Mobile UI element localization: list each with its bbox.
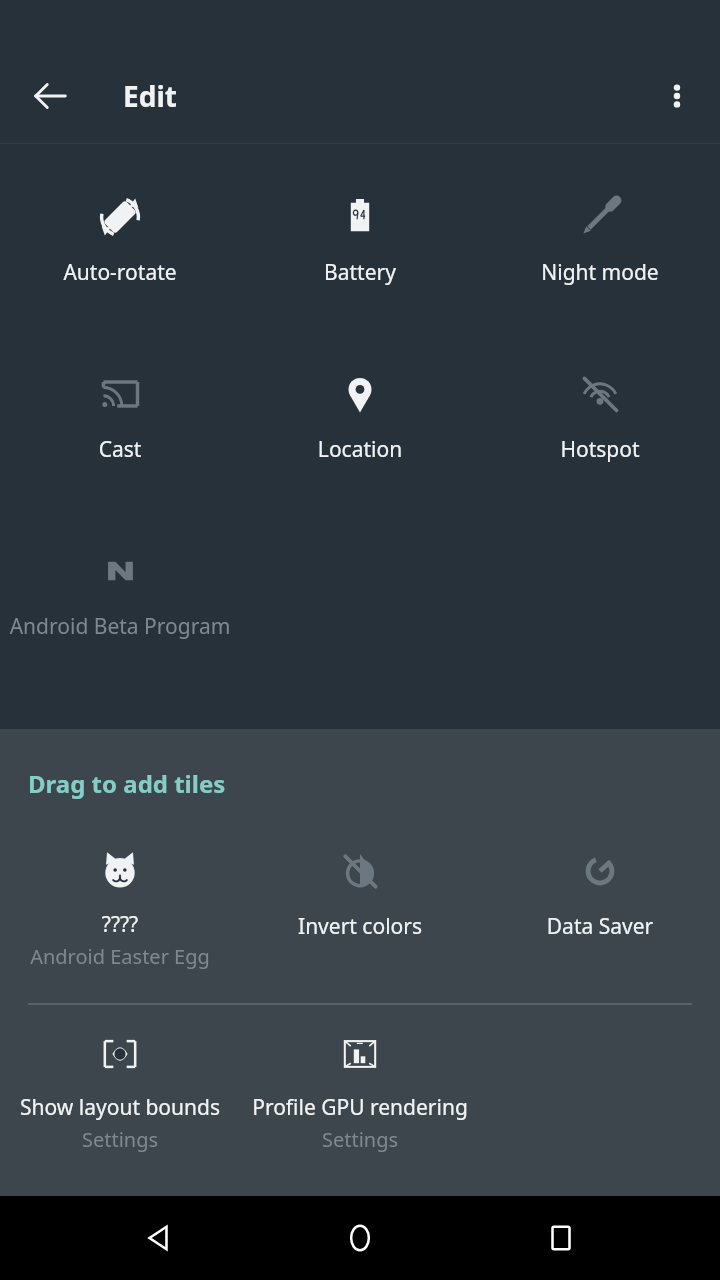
button[interactable]: Back xyxy=(117,1196,201,1280)
button[interactable]: Show layout bounds xyxy=(0,1031,240,1153)
staticText: Location xyxy=(246,435,474,464)
staticText: ???? xyxy=(4,910,236,939)
button[interactable]: Back xyxy=(18,64,82,128)
staticText: Android Easter Egg xyxy=(0,943,240,970)
button[interactable]: More options xyxy=(648,67,706,125)
staticText: Settings xyxy=(240,1126,480,1153)
button[interactable]: Battery xyxy=(240,194,480,287)
staticText: Auto-rotate xyxy=(6,258,234,287)
staticText: Cast xyxy=(6,435,234,464)
staticText: Edit xyxy=(123,77,177,115)
staticText: Hotspot xyxy=(486,435,714,464)
button[interactable]: Home xyxy=(318,1196,402,1280)
button[interactable]: Invert colors xyxy=(240,848,480,941)
button[interactable]: Android Beta Program xyxy=(0,548,240,641)
staticText: Battery xyxy=(246,258,474,287)
staticText: Drag to add tiles xyxy=(28,767,226,800)
staticText: Night mode xyxy=(486,258,714,287)
button[interactable]: Location xyxy=(240,371,480,464)
button[interactable]: Data Saver xyxy=(480,848,720,941)
staticText: Show layout bounds xyxy=(4,1093,236,1122)
button[interactable]: ???? xyxy=(0,848,240,970)
staticText: Settings xyxy=(0,1126,240,1153)
staticText: Invert colors xyxy=(246,912,474,941)
button[interactable]: Recents xyxy=(519,1196,603,1280)
staticText: Profile GPU rendering xyxy=(244,1093,476,1122)
button[interactable]: Hotspot xyxy=(480,371,720,464)
staticText: Data Saver xyxy=(486,912,714,941)
staticText: Android Beta Program xyxy=(6,612,234,641)
button[interactable]: Profile GPU rendering xyxy=(240,1031,480,1153)
button[interactable]: Auto-rotate xyxy=(0,194,240,287)
button[interactable]: Night mode xyxy=(480,194,720,287)
button[interactable]: Cast xyxy=(0,371,240,464)
